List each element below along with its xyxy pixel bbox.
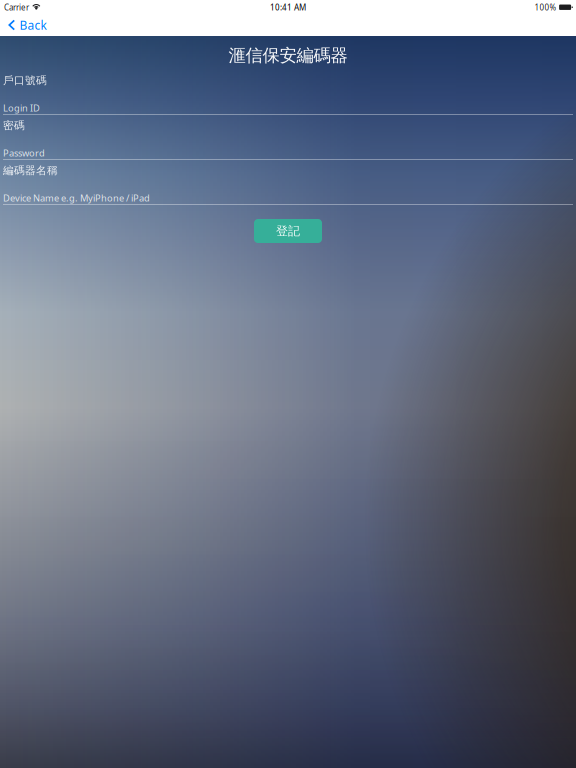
staticText: 100% bbox=[535, 2, 557, 13]
button[interactable]: 登記 bbox=[254, 219, 322, 243]
button[interactable]: Login ID bbox=[0, 90, 576, 115]
staticText: 戶口號碼 bbox=[3, 74, 47, 87]
staticText: Device Name e.g. MyiPhone / iPad bbox=[3, 192, 150, 204]
staticText: 編碼器名稱 bbox=[3, 164, 58, 177]
staticText: Back bbox=[19, 17, 46, 33]
button[interactable]: Back bbox=[0, 15, 46, 35]
staticText: 登記 bbox=[276, 224, 300, 238]
staticText: 滙信保安編碼器 bbox=[228, 45, 347, 66]
staticText: 10:41 AM bbox=[270, 2, 306, 13]
staticText: Password bbox=[3, 147, 45, 159]
button[interactable]: Device Name e.g. MyiPhone / iPad bbox=[0, 180, 576, 205]
button[interactable]: Password bbox=[0, 135, 576, 160]
staticText: 密碼 bbox=[3, 119, 25, 132]
staticText: Carrier bbox=[4, 2, 29, 13]
staticText: Login ID bbox=[3, 102, 40, 114]
